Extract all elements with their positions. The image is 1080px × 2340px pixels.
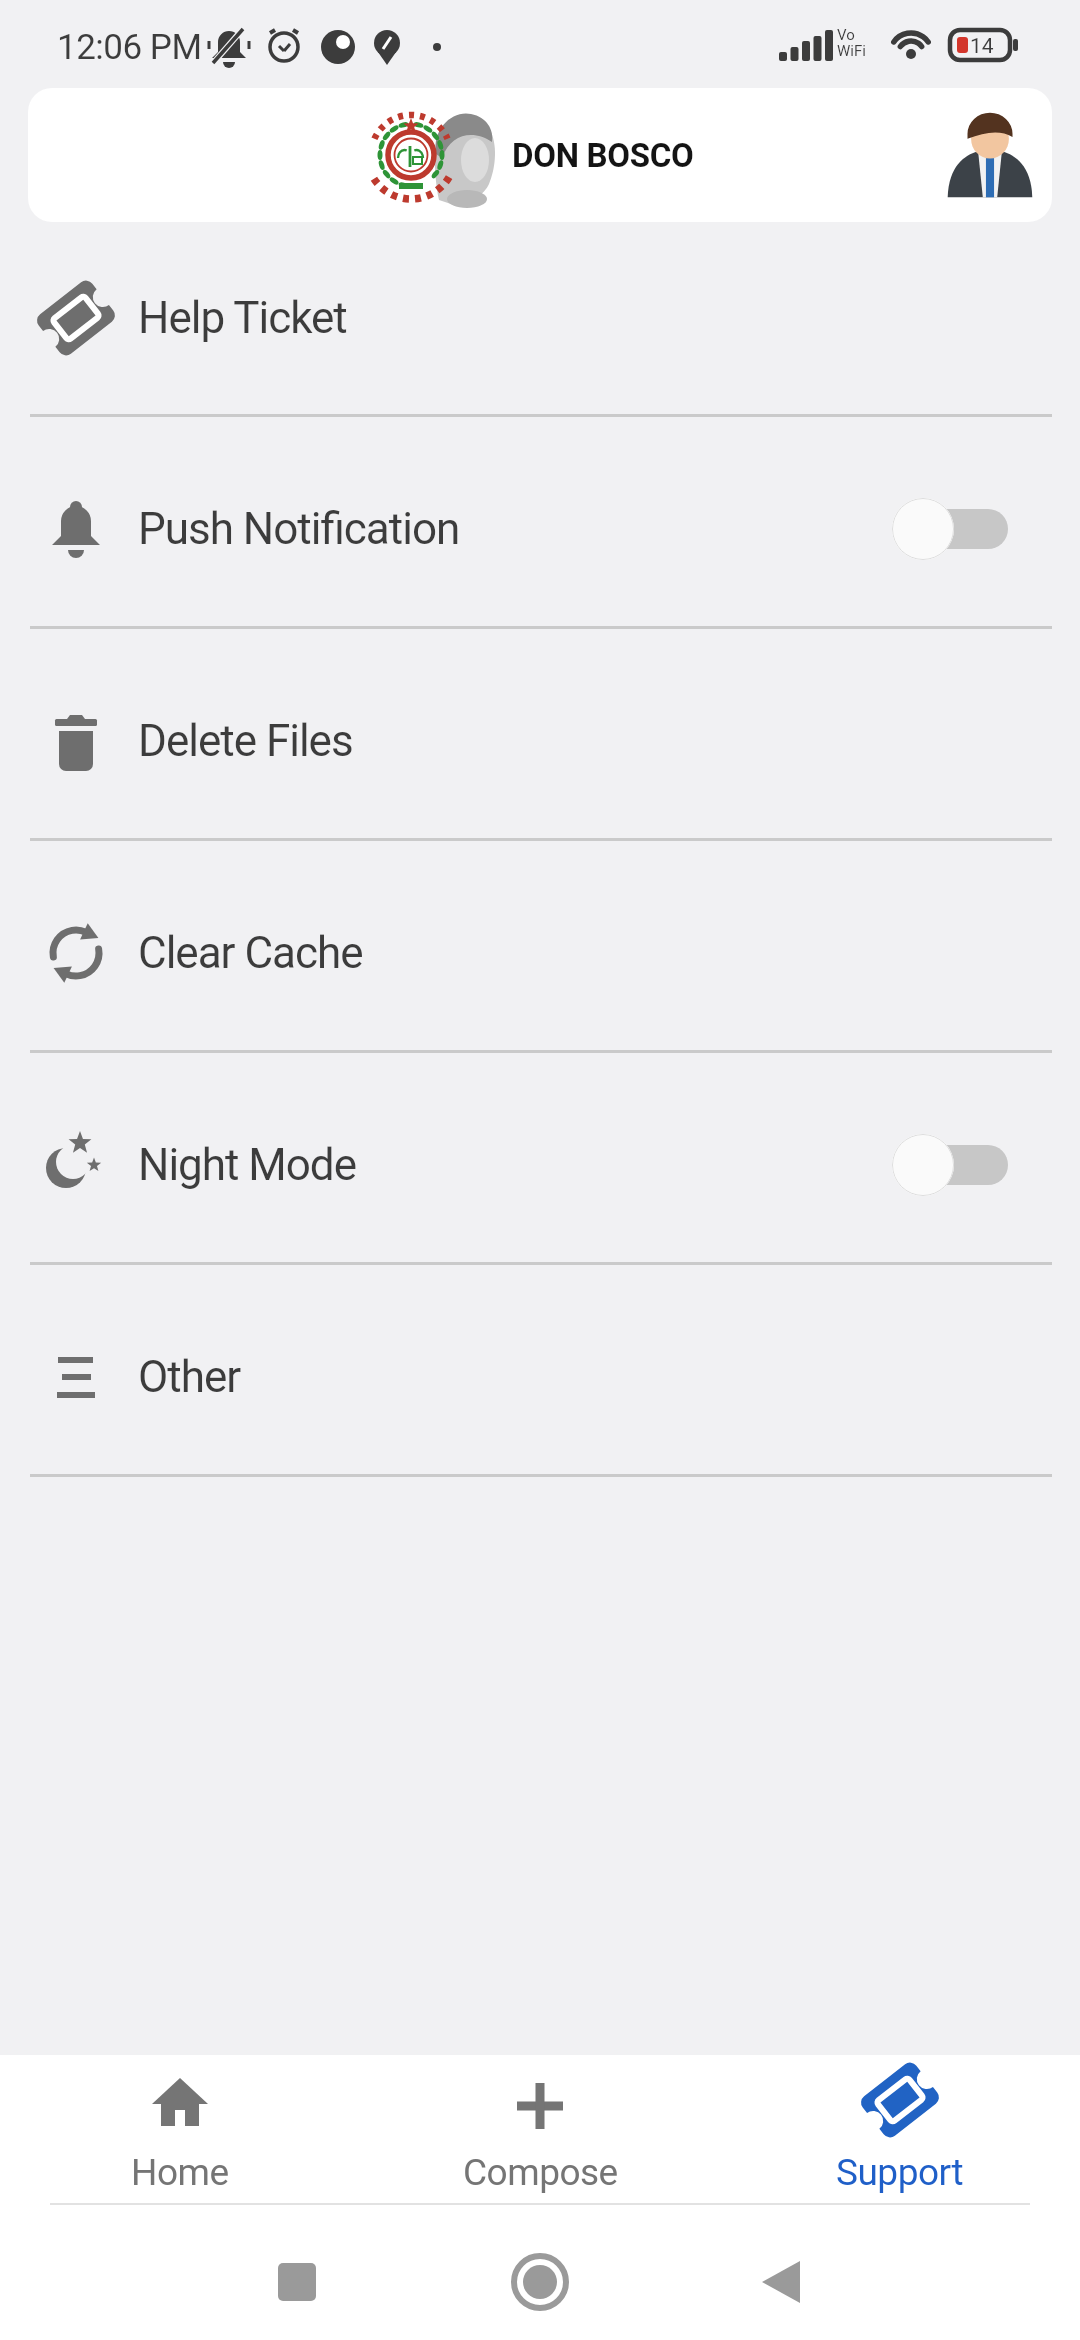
button[interactable]: Home xyxy=(30,2071,330,2197)
button[interactable]: DON BOSCO xyxy=(28,88,1052,222)
button[interactable]: Help Ticket xyxy=(0,222,1080,417)
staticText: DON BOSCO xyxy=(512,136,694,175)
button[interactable] xyxy=(258,2243,336,2321)
staticText: 12:06 PM xyxy=(57,27,202,68)
staticText: Compose xyxy=(463,2151,618,2194)
staticText: 14 xyxy=(970,34,994,59)
button[interactable]: Compose xyxy=(390,2071,690,2197)
staticText: Support xyxy=(836,2151,964,2194)
button[interactable] xyxy=(744,2243,822,2321)
button[interactable]: Delete Files xyxy=(0,629,1080,841)
button[interactable]: Other xyxy=(0,1265,1080,1477)
staticText: Vo WiFi xyxy=(837,26,866,59)
staticText: Help Ticket xyxy=(138,292,347,344)
button[interactable]: Night Mode xyxy=(0,1053,1080,1265)
staticText: Night Mode xyxy=(138,1139,356,1191)
button[interactable] xyxy=(892,498,1010,560)
button[interactable] xyxy=(892,1134,1010,1196)
button[interactable]: Clear Cache xyxy=(0,841,1080,1053)
staticText: Clear Cache xyxy=(138,927,363,979)
staticText: Home xyxy=(131,2151,229,2194)
staticText: Delete Files xyxy=(138,715,353,767)
button[interactable]: Support xyxy=(750,2071,1050,2197)
staticText: Other xyxy=(138,1351,241,1403)
button[interactable] xyxy=(945,110,1035,200)
button[interactable] xyxy=(501,2243,579,2321)
button[interactable]: Push Notification xyxy=(0,417,1080,629)
staticText: Push Notification xyxy=(138,503,460,555)
